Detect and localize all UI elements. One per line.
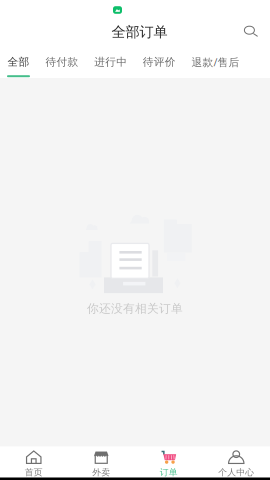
staticText: 首页 — [25, 467, 43, 478]
staticText: 待评价 — [143, 55, 176, 69]
button[interactable]: 退款/售后 — [184, 53, 247, 78]
staticText: 全部订单 — [111, 23, 167, 41]
staticText: 退款/售后 — [191, 55, 239, 69]
staticText: 你还没有相关订单 — [87, 301, 183, 316]
staticText: 订单 — [160, 467, 178, 478]
staticText: 外卖 — [92, 467, 110, 478]
staticText: 进行中 — [94, 55, 127, 69]
button[interactable]: 待付款 — [38, 53, 86, 78]
button[interactable]: 进行中 — [86, 53, 135, 78]
button[interactable]: 首页 — [0, 446, 67, 477]
button[interactable]: Search — [237, 20, 265, 44]
button[interactable]: 外卖 — [67, 446, 135, 477]
button[interactable]: 个人中心 — [202, 446, 270, 477]
staticText: 全部 — [7, 55, 29, 69]
staticText: 待付款 — [46, 55, 79, 69]
button[interactable]: 订单 — [135, 446, 202, 477]
button[interactable]: 全部 — [0, 53, 38, 78]
button[interactable]: 待评价 — [135, 53, 184, 78]
staticText: 个人中心 — [218, 467, 254, 478]
